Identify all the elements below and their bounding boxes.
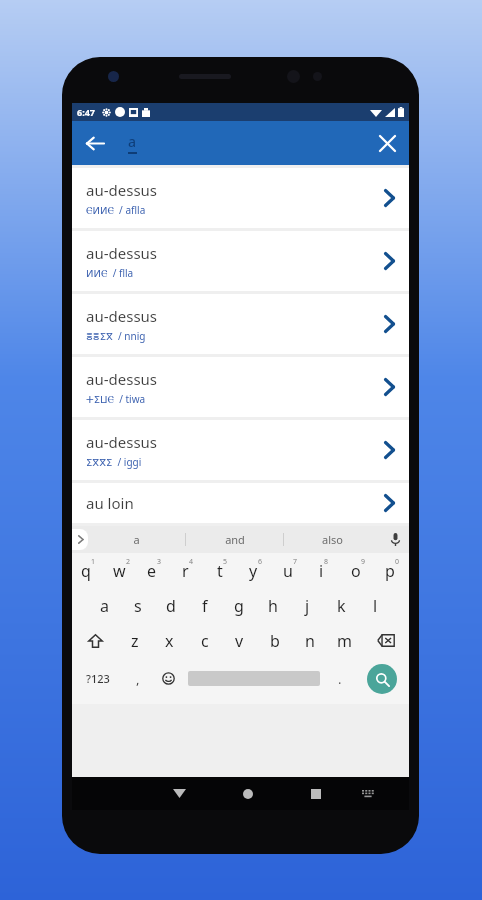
button[interactable]: u bbox=[273, 553, 307, 588]
staticText: . bbox=[338, 670, 342, 688]
staticText: l bbox=[373, 595, 378, 617]
staticText: a bbox=[133, 532, 140, 547]
staticText: c bbox=[201, 630, 209, 652]
button[interactable]: p bbox=[375, 553, 409, 588]
button[interactable]: a bbox=[88, 526, 185, 553]
staticText: ⲈⵍⵍⲈ / aflla bbox=[86, 203, 146, 217]
staticText: u bbox=[283, 560, 293, 582]
button[interactable]: j bbox=[290, 588, 324, 623]
staticText: r bbox=[182, 560, 189, 582]
staticText: , bbox=[136, 670, 140, 688]
button[interactable]: v bbox=[222, 623, 257, 658]
staticText: m bbox=[337, 630, 352, 652]
button[interactable]: Back bbox=[147, 777, 212, 810]
button[interactable]: au-dessus bbox=[72, 168, 409, 228]
staticText: ⵍⵍⲈ / flla bbox=[86, 266, 134, 280]
button[interactable]: x bbox=[152, 623, 187, 658]
button[interactable]: m bbox=[327, 623, 362, 658]
staticText: ?123 bbox=[86, 671, 110, 686]
button[interactable]: a bbox=[88, 588, 121, 623]
button[interactable]: z bbox=[118, 623, 152, 658]
button[interactable]: au-dessus bbox=[72, 420, 409, 480]
staticText: 7 bbox=[293, 557, 298, 567]
staticText: y bbox=[249, 560, 258, 582]
button[interactable]: . bbox=[325, 658, 355, 699]
button[interactable]: n bbox=[292, 623, 327, 658]
staticText: w bbox=[113, 560, 126, 582]
button[interactable]: g bbox=[222, 588, 256, 623]
button[interactable]: , bbox=[123, 658, 153, 699]
staticText: 6:47 bbox=[77, 106, 95, 118]
button[interactable]: au-dessus bbox=[72, 357, 409, 417]
button[interactable]: Recent apps bbox=[283, 777, 348, 810]
staticText: s bbox=[134, 595, 142, 617]
button[interactable]: and bbox=[186, 526, 283, 553]
button[interactable]: au-dessus bbox=[72, 231, 409, 291]
staticText: i bbox=[319, 560, 324, 582]
staticText: a bbox=[100, 595, 109, 617]
staticText: e bbox=[147, 560, 157, 582]
staticText: b bbox=[270, 630, 280, 652]
button[interactable]: ?123 bbox=[72, 658, 123, 699]
button[interactable]: b bbox=[257, 623, 292, 658]
button[interactable]: c bbox=[187, 623, 222, 658]
staticText: 2 bbox=[126, 557, 131, 567]
staticText: n bbox=[305, 630, 315, 652]
staticText: g bbox=[234, 595, 244, 617]
button[interactable]: q bbox=[72, 553, 105, 588]
staticText: also bbox=[322, 532, 343, 547]
button[interactable]: au-dessus bbox=[72, 294, 409, 354]
staticText: a bbox=[128, 132, 137, 151]
button[interactable]: l bbox=[358, 588, 392, 623]
staticText: q bbox=[81, 560, 91, 582]
button[interactable]: d bbox=[154, 588, 188, 623]
staticText: au-dessus bbox=[86, 369, 158, 389]
button[interactable]: au loin bbox=[72, 483, 409, 523]
staticText: 3 bbox=[157, 557, 162, 567]
staticText: ⴻⴻⵉⴳ / nnig bbox=[86, 329, 146, 343]
staticText: o bbox=[351, 560, 361, 582]
staticText: v bbox=[235, 630, 244, 652]
button[interactable]: Switch keyboard bbox=[348, 777, 388, 810]
button[interactable]: Back bbox=[72, 121, 116, 165]
staticText: h bbox=[268, 595, 278, 617]
staticText: 5 bbox=[223, 557, 228, 567]
button[interactable]: Shift bbox=[72, 623, 118, 658]
button[interactable]: Space bbox=[183, 658, 325, 699]
button[interactable]: y bbox=[239, 553, 273, 588]
button[interactable]: Backspace bbox=[362, 623, 409, 658]
button[interactable]: Voice input bbox=[381, 526, 409, 553]
staticText: x bbox=[165, 630, 174, 652]
staticText: au-dessus bbox=[86, 180, 158, 200]
button[interactable]: Search bbox=[355, 658, 409, 699]
button[interactable]: w bbox=[105, 553, 138, 588]
button[interactable]: Home bbox=[212, 777, 283, 810]
button[interactable]: Emoji bbox=[153, 658, 183, 699]
button[interactable]: t bbox=[205, 553, 239, 588]
button[interactable]: Clear search bbox=[365, 121, 409, 165]
staticText: au-dessus bbox=[86, 243, 158, 263]
staticText: ⵉⴳⴳⵉ / iggi bbox=[86, 455, 142, 469]
staticText: au-dessus bbox=[86, 432, 158, 452]
staticText: 0 bbox=[395, 557, 400, 567]
button[interactable]: k bbox=[324, 588, 358, 623]
staticText: au-dessus bbox=[86, 306, 158, 326]
staticText: 6 bbox=[258, 557, 263, 567]
button[interactable]: f bbox=[188, 588, 222, 623]
staticText: z bbox=[131, 630, 139, 652]
staticText: and bbox=[225, 532, 245, 547]
button[interactable]: s bbox=[121, 588, 154, 623]
button[interactable]: More suggestions bbox=[72, 529, 88, 550]
staticText: j bbox=[305, 595, 310, 617]
button[interactable]: r bbox=[171, 553, 205, 588]
button[interactable]: h bbox=[256, 588, 290, 623]
button[interactable]: also bbox=[284, 526, 381, 553]
button[interactable]: e bbox=[138, 553, 171, 588]
button[interactable]: i bbox=[307, 553, 341, 588]
staticText: t bbox=[217, 560, 223, 582]
staticText: au loin bbox=[86, 493, 134, 513]
staticText: 8 bbox=[324, 557, 329, 567]
staticText: d bbox=[166, 595, 176, 617]
staticText: 9 bbox=[361, 557, 366, 567]
button[interactable]: o bbox=[341, 553, 375, 588]
